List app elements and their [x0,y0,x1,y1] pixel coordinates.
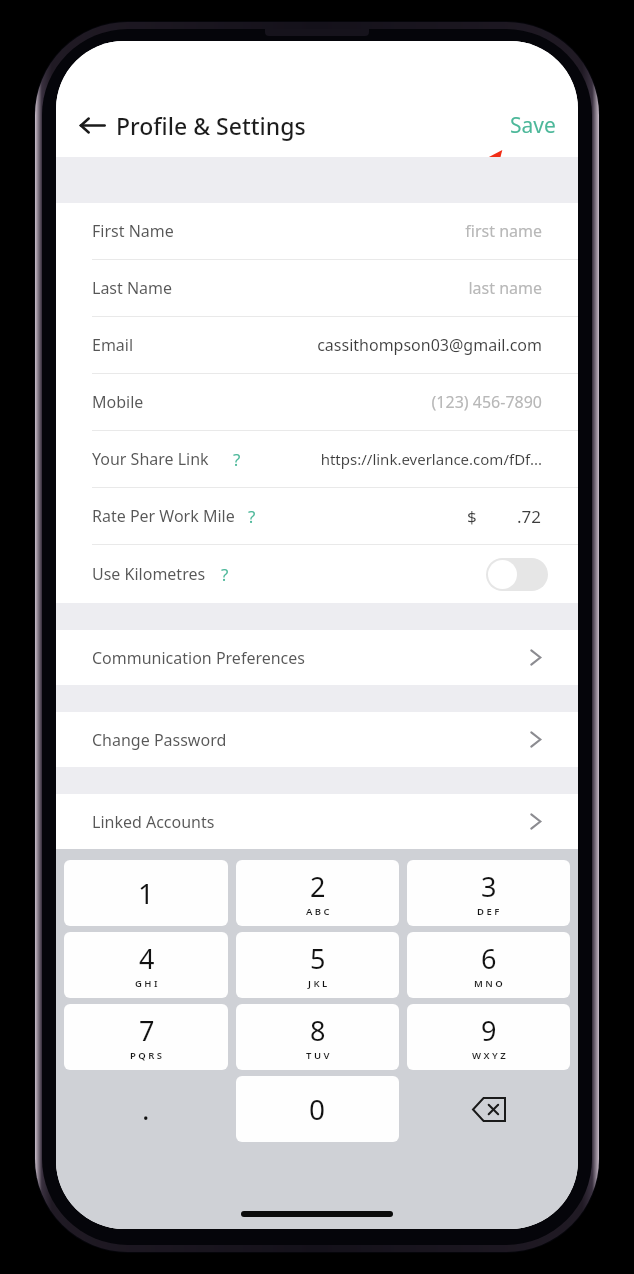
button[interactable]: 1 [64,860,228,926]
staticText: 1 [138,874,155,912]
button[interactable]: Back [70,103,114,147]
button[interactable]: 2 [236,860,399,926]
staticText: Linked Accounts [92,811,215,833]
staticText: Save [510,111,556,140]
staticText: Communication Preferences [92,647,305,669]
staticText: Use Kilometres [92,563,206,585]
staticText: ? [248,505,256,528]
staticText: 4 [139,940,155,977]
button[interactable]: Change Password [56,712,578,767]
staticText: Email [92,334,134,356]
button[interactable]: Your Share Link [56,431,578,487]
button[interactable]: 8 [236,1004,399,1070]
button[interactable]: 7 [64,1004,228,1070]
button[interactable]: 3 [407,860,570,926]
staticText: 5 [310,940,326,977]
button[interactable]: 0 [236,1076,399,1142]
button[interactable]: Email [56,317,578,373]
button[interactable]: Decimal point [64,1073,228,1145]
button[interactable]: 6 [407,932,570,998]
button[interactable]: Use Kilometres toggle [486,558,548,591]
staticText: ? [221,563,229,586]
staticText: 6 [481,940,497,977]
button[interactable]: 5 [236,932,399,998]
button[interactable]: Linked Accounts [56,794,578,849]
staticText: 7 [139,1012,155,1049]
staticText: . [142,1090,150,1128]
staticText: P Q R S [130,1049,163,1062]
staticText: M N O [474,977,503,990]
staticText: 8 [310,1012,326,1049]
staticText: D E F [477,905,500,918]
staticText: (123) 456-7890 [431,391,542,413]
staticText: Change Password [92,729,227,751]
staticText: Profile & Settings [116,110,306,141]
staticText: $ [467,505,477,528]
button[interactable]: First Name [56,203,578,259]
staticText: W X Y Z [472,1049,506,1062]
staticText: Mobile [92,391,144,413]
staticText: last name [468,277,542,299]
staticText: T U V [306,1049,330,1062]
staticText: ? [233,448,241,471]
staticText: J K L [308,977,328,990]
button[interactable]: 9 [407,1004,570,1070]
staticText: cassithompson03@gmail.com [317,334,542,356]
staticText: 2 [310,868,326,905]
staticText: 3 [481,868,497,905]
staticText: Your Share Link [92,448,209,470]
staticText: 9 [481,1012,497,1049]
button[interactable]: Mobile [56,374,578,430]
staticText: Last Name [92,277,173,299]
button[interactable]: Backspace [407,1073,570,1145]
staticText: .72 [517,505,542,528]
staticText: 0 [309,1090,326,1128]
staticText: https://link.everlance.com/fDf... [320,449,542,469]
staticText: First Name [92,220,174,242]
staticText: Rate Per Work Mile [92,505,235,527]
button[interactable]: Save [510,111,556,140]
button[interactable]: Rate Per Work Mile [56,488,578,544]
button[interactable]: Last Name [56,260,578,316]
button[interactable]: Use Kilometres [56,545,578,603]
staticText: first name [465,220,542,242]
staticText: A B C [306,905,330,918]
button[interactable]: Communication Preferences [56,630,578,685]
button[interactable]: 4 [64,932,228,998]
staticText: G H I [135,977,158,990]
